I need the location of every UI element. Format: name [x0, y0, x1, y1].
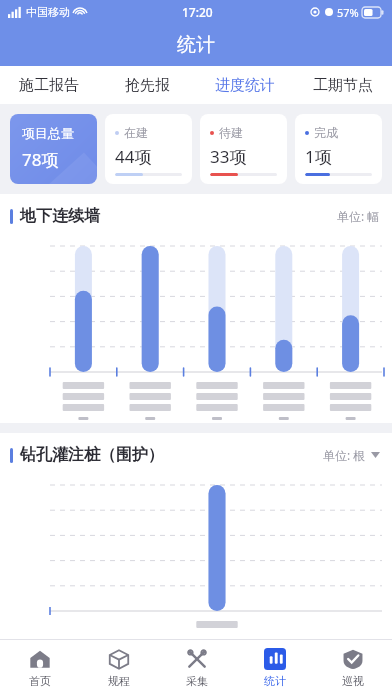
button[interactable]: 巡视 — [314, 640, 392, 696]
staticText: 57% — [337, 5, 359, 20]
staticText: 首页 — [29, 674, 51, 688]
staticText: 44项 — [115, 145, 152, 168]
staticText: 统计 — [177, 33, 215, 57]
staticText: 抢先报 — [125, 76, 170, 95]
staticText: 钻孔灌注桩（围护） — [20, 445, 164, 465]
button[interactable]: 单位: 幅 — [337, 208, 380, 224]
staticText: 1项 — [305, 145, 332, 168]
button[interactable]: 在建 — [105, 114, 192, 184]
button[interactable]: 项目总量 — [10, 114, 97, 184]
button[interactable]: 单位: 根 — [323, 447, 380, 463]
staticText: 项目总量 — [22, 125, 74, 141]
staticText: 统计 — [264, 674, 286, 688]
staticText: 在建 — [124, 125, 148, 140]
staticText: 78项 — [22, 148, 59, 171]
staticText: 施工报告 — [19, 76, 79, 95]
button[interactable]: 完成 — [295, 114, 382, 184]
button[interactable]: 首页 — [0, 640, 79, 696]
button[interactable]: 抢先报 — [98, 66, 196, 104]
button[interactable]: 统计 — [236, 640, 314, 696]
button[interactable]: 规程 — [79, 640, 158, 696]
button[interactable]: 施工报告 — [0, 66, 98, 104]
staticText: 单位: 幅 — [337, 208, 380, 224]
staticText: 采集 — [186, 674, 208, 688]
staticText: 地下连续墙 — [20, 206, 100, 226]
staticText: 17:20 — [182, 4, 213, 20]
staticText: 完成 — [314, 125, 338, 140]
staticText: 进度统计 — [215, 76, 275, 95]
staticText: 工期节点 — [313, 76, 373, 95]
staticText: 单位: 根 — [323, 447, 366, 463]
button[interactable]: 采集 — [158, 640, 236, 696]
staticText: 待建 — [219, 125, 243, 140]
staticText: 规程 — [108, 674, 130, 688]
staticText: 巡视 — [342, 674, 364, 688]
staticText: 33项 — [210, 145, 247, 168]
button[interactable]: 进度统计 — [196, 66, 294, 104]
button[interactable]: 待建 — [200, 114, 287, 184]
other: Select unit — [371, 452, 380, 458]
staticText: 中国移动 — [26, 5, 70, 19]
button[interactable]: 工期节点 — [294, 66, 392, 104]
